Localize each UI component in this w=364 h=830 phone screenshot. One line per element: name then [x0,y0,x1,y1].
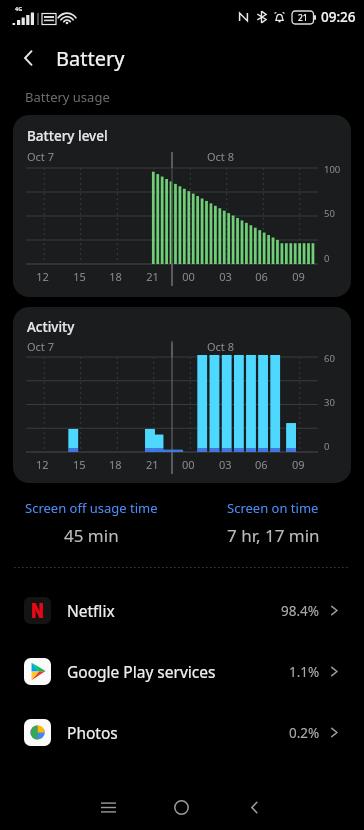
staticText: 21 [146,269,159,284]
staticText: 7 hr, 17 min [227,524,320,547]
staticText: Screen off usage time [25,499,158,517]
staticText: Photos [67,722,289,743]
staticText: 12 [36,457,49,472]
button[interactable]: Back [12,41,46,75]
staticText: 21 [298,12,308,24]
staticText: 12 [36,269,49,284]
button[interactable]: Screen off usage time [0,499,182,547]
staticText: 00 [182,457,195,472]
staticText: Battery usage [25,88,110,106]
staticText: 4G [15,5,23,12]
button[interactable]: Home [145,784,218,830]
staticText: 18 [109,457,122,472]
staticText: Google Play services [67,661,289,682]
button[interactable]: Recents [72,784,145,830]
staticText: 06 [255,457,268,472]
button[interactable]: Netflix [0,580,364,641]
staticText: Netflix [67,600,281,621]
staticText: Battery level [27,127,108,145]
staticText: 00 [182,269,195,284]
staticText: 18 [109,269,122,284]
button[interactable]: Back [218,784,291,830]
staticText: 15 [73,457,86,472]
staticText: 21 [146,457,159,472]
staticText: 100 [324,163,341,176]
button[interactable]: Screen on time [182,499,364,547]
staticText: Screen on time [227,499,319,517]
staticText: 0 [324,252,330,265]
staticText: 09 [292,269,305,284]
staticText: Oct 8 [207,149,234,164]
button[interactable]: Photos [0,702,364,763]
staticText: 98.4% [281,602,320,620]
staticText: 1.1% [289,663,320,681]
staticText: 0.2% [289,724,320,742]
staticText: 60 [324,352,335,365]
staticText: 03 [219,269,232,284]
staticText: 30 [324,396,335,409]
staticText: 45 min [64,524,119,547]
staticText: 50 [324,207,335,220]
staticText: Oct 7 [27,149,54,164]
staticText: Battery [56,45,125,72]
staticText: 09:26 [321,8,356,26]
staticText: Oct 8 [207,339,234,354]
staticText: 15 [73,269,86,284]
staticText: Oct 7 [27,339,54,354]
staticText: 0 [324,440,330,453]
staticText: 06 [255,269,268,284]
button[interactable]: Google Play services [0,641,364,702]
staticText: Activity [27,318,75,336]
staticText: 03 [219,457,232,472]
staticText: 09 [292,457,305,472]
